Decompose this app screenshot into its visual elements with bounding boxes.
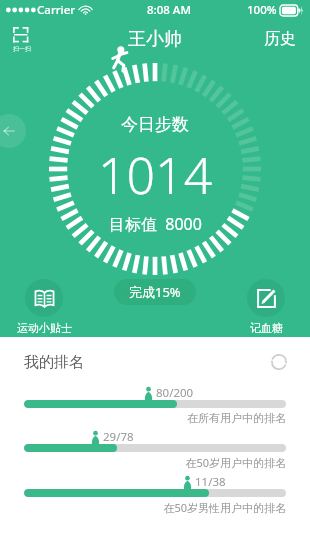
staticText: 我的排名: [24, 353, 84, 372]
staticText: 在50岁用户中的排名: [24, 455, 286, 470]
button[interactable]: 运动小贴士: [12, 279, 76, 335]
staticText: 记血糖: [250, 321, 283, 335]
staticText: 在所有用户中的排名: [24, 411, 286, 425]
staticText: 在50岁男性用户中的排名: [24, 500, 286, 515]
staticText: 29/78: [103, 429, 134, 444]
button[interactable]: Back: [0, 114, 26, 148]
staticText: 历史: [264, 29, 296, 49]
button[interactable]: 80/200: [0, 381, 310, 425]
staticText: 王小帅: [128, 28, 182, 51]
button[interactable]: 历史: [250, 25, 310, 53]
button[interactable]: 29/78: [0, 425, 310, 470]
staticText: 11/38: [195, 474, 226, 489]
button[interactable]: 刷新: [266, 349, 292, 375]
staticText: 100%: [247, 2, 277, 18]
button[interactable]: 记血糖: [234, 279, 298, 335]
button[interactable]: 扫一扫: [12, 26, 31, 53]
button[interactable]: 11/38: [0, 470, 310, 515]
staticText: 扫一扫: [13, 45, 31, 53]
button[interactable]: 完成15%: [114, 279, 196, 305]
staticText: Carrier: [37, 2, 76, 18]
staticText: 8:08 AM: [147, 2, 191, 18]
staticText: 目标值 8000: [109, 213, 202, 235]
staticText: 1014: [98, 141, 213, 209]
staticText: 运动小贴士: [17, 321, 72, 335]
staticText: 80/200: [156, 385, 194, 400]
staticText: 完成15%: [129, 283, 181, 301]
staticText: 今日步数: [121, 114, 189, 135]
